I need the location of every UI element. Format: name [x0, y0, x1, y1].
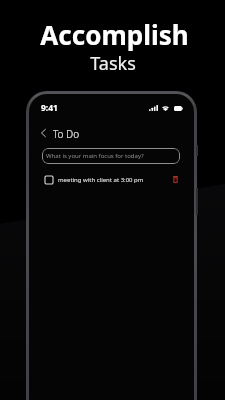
staticText: What is your main focus for today? [46, 152, 144, 160]
staticText: 9:41 [41, 102, 58, 114]
button[interactable]: What is your main focus for today? [42, 148, 180, 164]
staticText: meeting with client at 3:00 pm [58, 176, 144, 184]
button[interactable]: Delete task [171, 174, 180, 185]
staticText: To Do [53, 127, 80, 138]
button[interactable]: meeting with client at 3:00 pm [45, 173, 180, 186]
button[interactable]: Back [39, 127, 48, 138]
staticText: Tasks [90, 51, 136, 76]
staticText: Accomplish [40, 17, 189, 52]
